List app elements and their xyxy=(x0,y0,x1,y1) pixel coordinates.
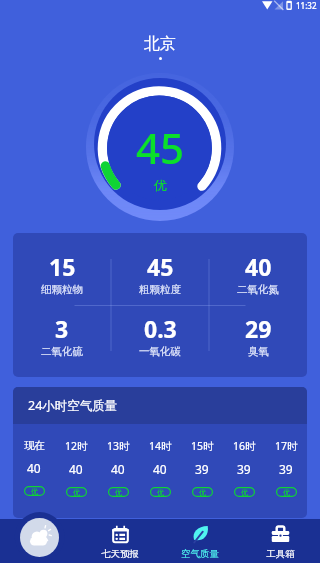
staticText: 0.3 xyxy=(144,313,177,344)
staticText: 24小时空气质量 xyxy=(28,397,118,414)
staticText: 39 xyxy=(195,461,209,477)
staticText: 13时 xyxy=(107,439,130,453)
staticText: 17时 xyxy=(275,439,298,453)
staticText: 优 xyxy=(157,488,164,497)
staticText: 工具箱 xyxy=(266,548,295,560)
staticText: 优 xyxy=(73,488,80,497)
staticText: 二氧化氮 xyxy=(237,283,279,296)
button[interactable]: Weather xyxy=(20,518,59,557)
staticText: 细颗粒物 xyxy=(41,283,83,296)
staticText: 优 xyxy=(199,488,206,497)
staticText: 40 xyxy=(245,251,272,282)
staticText: 12时 xyxy=(65,439,88,453)
staticText: 空气质量 xyxy=(181,548,219,560)
staticText: 臭氧 xyxy=(248,345,269,358)
staticText: 45 xyxy=(147,251,174,282)
staticText: 14时 xyxy=(149,439,172,453)
staticText: 七天预报 xyxy=(101,548,139,560)
button[interactable]: 空气质量 xyxy=(160,519,240,563)
staticText: 优 xyxy=(31,487,38,496)
staticText: 40 xyxy=(27,460,41,476)
staticText: 39 xyxy=(279,461,293,477)
staticText: 北京 xyxy=(144,34,176,54)
button[interactable]: 工具箱 xyxy=(240,519,320,563)
staticText: 29 xyxy=(245,313,272,344)
staticText: 3 xyxy=(55,313,69,344)
staticText: 11:32 xyxy=(296,0,317,11)
staticText: 现在 xyxy=(24,439,45,452)
staticText: 45 xyxy=(136,119,185,176)
staticText: 粗颗粒度 xyxy=(139,283,181,296)
staticText: 16时 xyxy=(233,439,256,453)
staticText: 15时 xyxy=(191,439,214,453)
staticText: 优 xyxy=(283,488,290,497)
staticText: 一氧化碳 xyxy=(139,345,181,358)
staticText: 优 xyxy=(115,488,122,497)
staticText: 优 xyxy=(154,177,167,193)
staticText: 二氧化硫 xyxy=(41,345,83,358)
staticText: 39 xyxy=(237,461,251,477)
staticText: 40 xyxy=(69,461,83,477)
staticText: 40 xyxy=(153,461,167,477)
staticText: 40 xyxy=(111,461,125,477)
button[interactable]: 七天预报 xyxy=(80,519,160,563)
staticText: 15 xyxy=(49,251,76,282)
staticText: 优 xyxy=(241,488,248,497)
